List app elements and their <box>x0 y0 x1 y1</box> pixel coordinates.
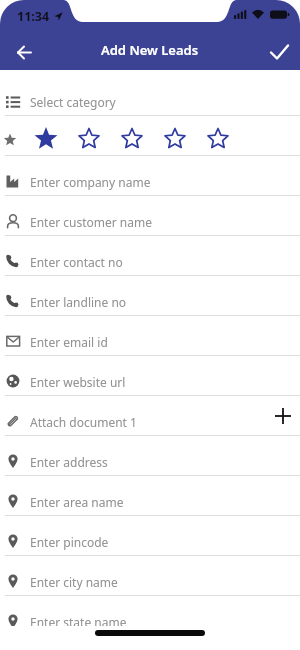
staticText: Enter pincode <box>30 534 109 550</box>
button[interactable]: Enter pincode <box>0 516 300 556</box>
staticText: Enter address <box>30 454 108 470</box>
button[interactable]: Enter city name <box>0 556 300 596</box>
staticText: Add New Leads <box>101 41 199 59</box>
button[interactable] <box>266 36 294 64</box>
button[interactable]: Enter state name <box>0 596 300 636</box>
button[interactable] <box>0 116 300 156</box>
button[interactable]: Enter area name <box>0 476 300 516</box>
button[interactable] <box>10 36 38 64</box>
staticText: Enter state name <box>30 614 127 630</box>
button[interactable]: Enter address <box>0 436 300 476</box>
staticText: Enter customer name <box>30 214 152 230</box>
staticText: 11:34 <box>17 8 50 25</box>
button[interactable]: Enter customer name <box>0 196 300 236</box>
staticText: Enter city name <box>30 574 118 590</box>
staticText: Enter area name <box>30 494 124 510</box>
button[interactable]: Enter website url <box>0 356 300 396</box>
button[interactable]: Enter email id <box>0 316 300 356</box>
staticText: Select category <box>30 94 116 110</box>
button[interactable]: Enter contact no <box>0 236 300 276</box>
staticText: Enter landline no <box>30 294 127 310</box>
button[interactable]: Attach document 1 <box>0 396 300 436</box>
button[interactable]: Enter landline no <box>0 276 300 316</box>
staticText: Enter email id <box>30 334 108 350</box>
button[interactable] <box>275 408 291 424</box>
staticText: Attach document 1 <box>30 414 137 430</box>
staticText: Enter website url <box>30 374 126 390</box>
staticText: Enter company name <box>30 174 151 190</box>
button[interactable]: Select category <box>0 76 300 116</box>
button[interactable]: Enter company name <box>0 156 300 196</box>
staticText: Enter contact no <box>30 254 123 270</box>
